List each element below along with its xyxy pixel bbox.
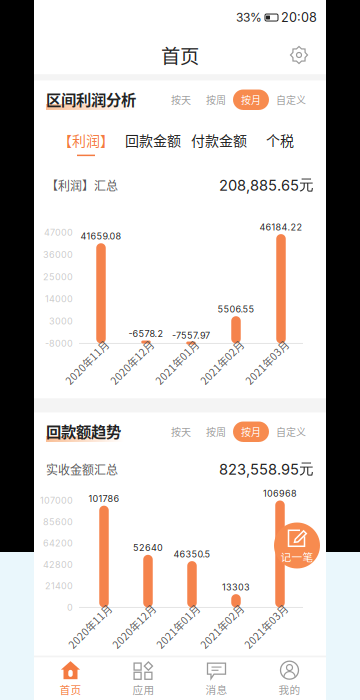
button[interactable]: 应用 [107,656,180,700]
staticText: 3000 [49,316,73,327]
button[interactable]: 【利润】 [52,129,120,151]
staticText: 按月 [241,424,261,439]
button[interactable]: 按天 [163,421,199,442]
staticText: -7557.97 [172,330,210,341]
staticText: 2020年11月 [62,619,118,634]
staticText: -8000 [45,338,73,349]
staticText: 记一笔 [280,549,313,564]
staticText: 14000 [45,294,73,305]
staticText: 回款金额 [125,130,181,150]
staticText: 13303 [222,582,250,593]
staticText: 41659.08 [80,231,121,242]
staticText: 21400 [45,581,73,592]
staticText: 52640 [133,542,163,553]
button[interactable]: 按周 [198,421,234,442]
button[interactable]: 付款金额 [186,129,252,151]
staticText: 自定义 [276,92,306,107]
button[interactable]: 按周 [198,89,234,110]
staticText: 首页 [161,41,199,69]
staticText: 46184.22 [259,222,302,233]
staticText: 2020年11月 [59,355,115,370]
staticText: 208,885.65元 [219,176,314,194]
staticText: 2021年03月 [238,619,294,634]
staticText: 【利润】 [58,130,114,150]
button[interactable]: Settings [284,40,314,70]
staticText: 5506.55 [217,304,254,315]
staticText: 实收金额汇总 [46,460,118,478]
staticText: 2021年01月 [150,619,206,634]
staticText: 823,558.95元 [219,460,314,478]
staticText: 首页 [59,682,81,697]
staticText: 2020年12月 [106,619,162,634]
button[interactable]: 自定义 [268,89,314,110]
staticText: 我的 [278,682,300,697]
button[interactable]: 消息 [180,656,253,700]
staticText: 付款金额 [191,130,247,150]
button[interactable]: 自定义 [268,421,314,442]
staticText: 2021年02月 [194,619,250,634]
staticText: 47000 [44,227,73,238]
staticText: 20:08 [281,10,317,25]
staticText: 85600 [43,516,73,527]
staticText: 回款额趋势 [46,420,121,442]
button[interactable]: 按月 [233,89,269,110]
button[interactable]: 记一笔 [274,522,320,568]
staticText: 按月 [241,92,261,107]
staticText: 2020年12月 [104,355,160,370]
staticText: 按天 [171,424,191,439]
staticText: 2021年03月 [239,355,295,370]
button[interactable]: 首页 [34,656,107,700]
staticText: 2021年01月 [149,355,205,370]
staticText: 按天 [171,92,191,107]
staticText: 101786 [88,493,119,504]
staticText: 区间利润分析 [46,88,136,110]
staticText: 【利润】汇总 [46,176,118,194]
staticText: 42800 [43,559,73,570]
button[interactable]: 按月 [233,421,269,442]
staticText: 46350.5 [173,549,210,560]
staticText: -6578.2 [128,328,163,339]
button[interactable]: 按天 [163,89,199,110]
staticText: 2021年02月 [194,355,250,370]
staticText: 个税 [266,130,294,150]
staticText: 自定义 [276,424,306,439]
staticText: 按周 [206,92,226,107]
button[interactable]: 我的 [253,656,326,700]
staticText: 消息 [205,682,227,697]
staticText: 64200 [43,538,73,549]
staticText: 按周 [206,424,226,439]
staticText: 106968 [263,488,297,499]
staticText: 36000 [43,249,73,260]
button[interactable]: 个税 [252,129,308,151]
staticText: 0 [67,602,73,613]
staticText: 33% [236,10,262,25]
button[interactable]: 回款金额 [120,129,186,151]
staticText: 应用 [132,682,154,697]
staticText: 107000 [40,495,73,506]
staticText: 25000 [43,271,73,282]
